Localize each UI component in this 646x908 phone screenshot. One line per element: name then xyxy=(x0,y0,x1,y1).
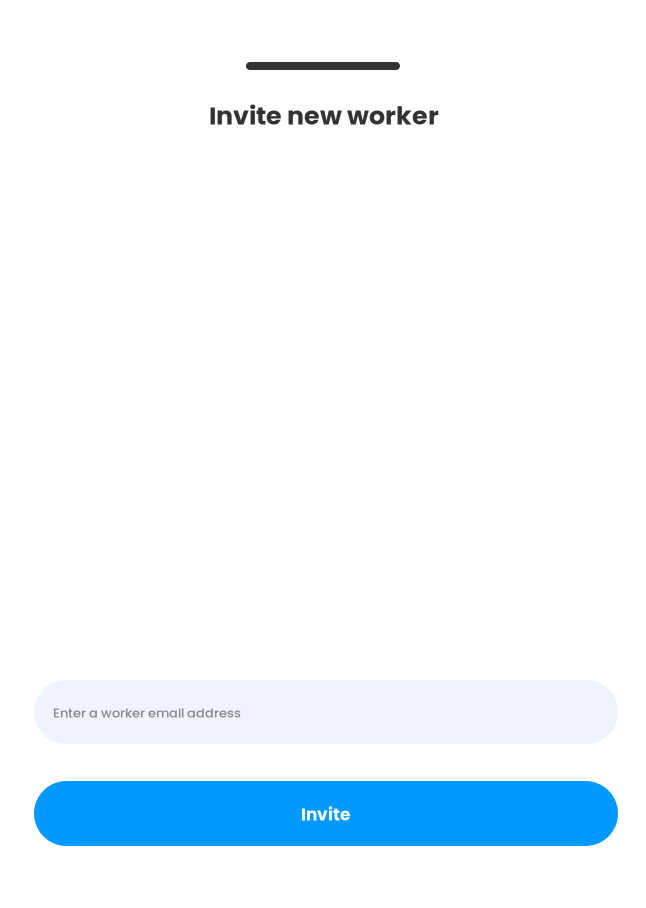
button[interactable]: Invite xyxy=(34,781,618,846)
staticText: Invite new worker xyxy=(209,98,439,133)
staticText: Invite xyxy=(301,803,350,826)
staticText: Enter a worker email address xyxy=(53,704,241,722)
button[interactable]: Enter a worker email address xyxy=(34,680,618,744)
